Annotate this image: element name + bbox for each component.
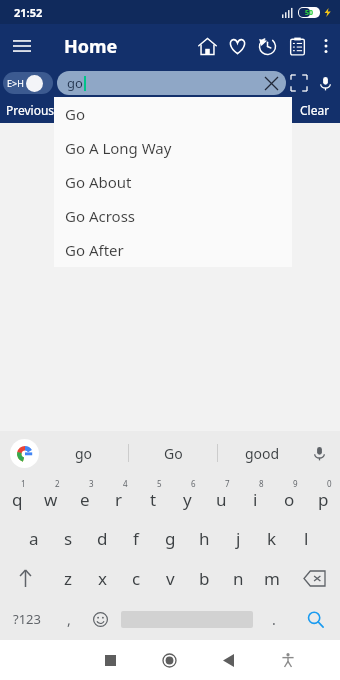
button[interactable]: Menu bbox=[0, 24, 44, 68]
button[interactable]: Emoji bbox=[84, 598, 117, 640]
button[interactable]: Go About bbox=[54, 165, 292, 199]
button[interactable]: z bbox=[51, 558, 85, 598]
staticText: 3 bbox=[89, 478, 94, 489]
staticText: 7 bbox=[225, 478, 230, 489]
staticText: w bbox=[44, 488, 58, 511]
staticText: Go bbox=[164, 444, 183, 463]
staticText: k bbox=[267, 527, 277, 550]
button[interactable]: go bbox=[39, 431, 128, 475]
staticText: s bbox=[64, 527, 73, 550]
button[interactable]: d bbox=[85, 518, 119, 558]
staticText: p bbox=[318, 488, 329, 511]
button[interactable]: x bbox=[85, 558, 119, 598]
staticText: go bbox=[67, 74, 83, 92]
staticText: ?123 bbox=[13, 610, 41, 628]
button[interactable]: Voice input bbox=[306, 440, 332, 466]
button[interactable]: good bbox=[218, 431, 306, 475]
button[interactable]: 0 bbox=[306, 475, 340, 518]
staticText: Clear bbox=[300, 102, 330, 118]
button[interactable]: Clear text bbox=[260, 72, 282, 94]
button[interactable]: 6 bbox=[170, 475, 204, 518]
staticText: v bbox=[166, 567, 175, 590]
staticText: Go Across bbox=[65, 206, 136, 226]
button[interactable]: Favorites bbox=[222, 24, 252, 68]
staticText: good bbox=[245, 444, 280, 463]
button[interactable]: m bbox=[255, 558, 289, 598]
staticText: Home bbox=[64, 34, 192, 59]
button[interactable]: a bbox=[17, 518, 51, 558]
button[interactable]: Back bbox=[199, 640, 258, 680]
staticText: m bbox=[264, 567, 280, 590]
button[interactable]: 1 bbox=[0, 475, 34, 518]
staticText: i bbox=[253, 488, 258, 511]
button[interactable]: Recents bbox=[81, 640, 140, 680]
staticText: r bbox=[115, 488, 123, 511]
button[interactable]: Voice search bbox=[312, 70, 338, 96]
button[interactable]: Home bbox=[140, 640, 199, 680]
button[interactable]: 4 bbox=[102, 475, 136, 518]
button[interactable]: 5 bbox=[136, 475, 170, 518]
button[interactable]: Home bbox=[192, 24, 222, 68]
staticText: E>H bbox=[7, 77, 24, 89]
button[interactable]: s bbox=[51, 518, 85, 558]
button[interactable]: , bbox=[54, 598, 84, 640]
staticText: n bbox=[233, 567, 244, 590]
staticText: 50 bbox=[305, 8, 314, 18]
staticText: 4 bbox=[123, 478, 128, 489]
button[interactable]: History bbox=[252, 24, 282, 68]
button[interactable]: E>H bbox=[3, 72, 53, 94]
button[interactable]: g bbox=[153, 518, 187, 558]
staticText: Go bbox=[65, 104, 85, 124]
button[interactable]: 9 bbox=[272, 475, 306, 518]
button[interactable]: Shift bbox=[0, 558, 51, 598]
button[interactable]: 7 bbox=[204, 475, 238, 518]
button[interactable]: Google bbox=[10, 439, 39, 468]
button[interactable]: 3 bbox=[68, 475, 102, 518]
button[interactable]: ?123 bbox=[0, 598, 54, 640]
staticText: Go A Long Way bbox=[65, 138, 172, 158]
staticText: o bbox=[284, 488, 295, 511]
button[interactable]: Previous bbox=[6, 102, 55, 118]
staticText: 6 bbox=[191, 478, 196, 489]
staticText: h bbox=[199, 527, 210, 550]
button[interactable]: f bbox=[119, 518, 153, 558]
staticText: a bbox=[29, 527, 39, 550]
button[interactable]: Search bbox=[290, 598, 340, 640]
button[interactable]: . bbox=[257, 598, 290, 640]
button[interactable]: k bbox=[255, 518, 289, 558]
button[interactable]: b bbox=[187, 558, 221, 598]
staticText: y bbox=[183, 488, 192, 511]
button[interactable]: Go bbox=[54, 97, 292, 131]
button[interactable]: Go Across bbox=[54, 199, 292, 233]
button[interactable]: Backspace bbox=[289, 558, 340, 598]
staticText: l bbox=[304, 527, 309, 550]
button[interactable]: More options bbox=[312, 24, 340, 68]
button[interactable]: v bbox=[153, 558, 187, 598]
staticText: 2 bbox=[55, 478, 60, 489]
button[interactable]: Lists bbox=[282, 24, 312, 68]
button[interactable]: Clear bbox=[300, 102, 330, 118]
staticText: 9 bbox=[293, 478, 298, 489]
button[interactable]: Go After bbox=[54, 233, 292, 267]
button[interactable]: Go A Long Way bbox=[54, 131, 292, 165]
button[interactable]: c bbox=[119, 558, 153, 598]
button[interactable]: Go bbox=[129, 431, 217, 475]
button[interactable]: Accessibility bbox=[258, 640, 317, 680]
button[interactable]: h bbox=[187, 518, 221, 558]
staticText: c bbox=[132, 567, 141, 590]
staticText: . bbox=[272, 610, 276, 629]
button[interactable]: 8 bbox=[238, 475, 272, 518]
button[interactable]: j bbox=[221, 518, 255, 558]
staticText: , bbox=[67, 610, 71, 629]
staticText: f bbox=[133, 527, 139, 550]
staticText: g bbox=[165, 527, 176, 550]
staticText: q bbox=[12, 488, 23, 511]
staticText: 5 bbox=[157, 478, 162, 489]
staticText: Previous bbox=[6, 102, 55, 118]
button[interactable]: go bbox=[57, 71, 286, 95]
button[interactable]: 2 bbox=[34, 475, 68, 518]
button[interactable]: OCR scan bbox=[286, 70, 312, 96]
button[interactable]: n bbox=[221, 558, 255, 598]
button[interactable]: l bbox=[289, 518, 323, 558]
